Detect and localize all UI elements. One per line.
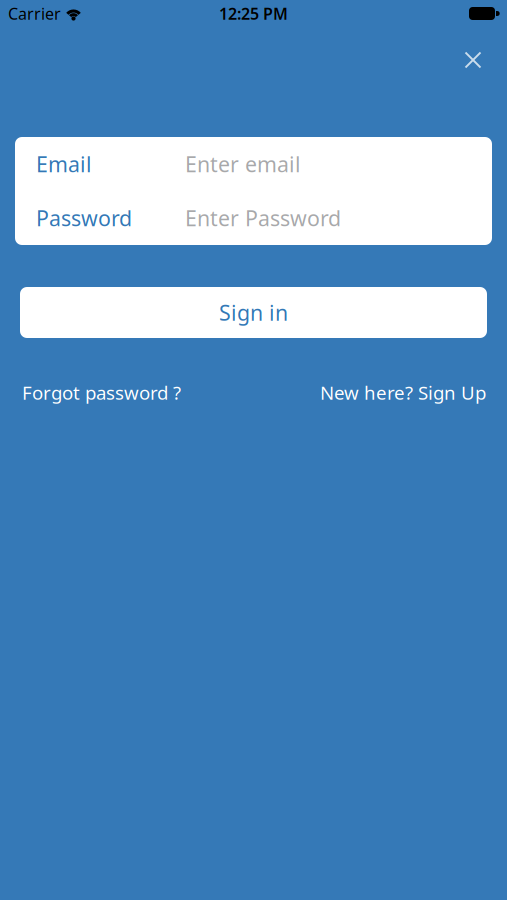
staticText: Carrier <box>8 3 61 24</box>
staticText: New here? Sign Up <box>320 380 486 405</box>
staticText: Email <box>36 150 92 178</box>
staticText: Forgot password ? <box>22 380 181 405</box>
button[interactable]: Close <box>465 52 481 68</box>
button[interactable]: New here? Sign Up <box>320 380 486 405</box>
staticText: 12:25 PM <box>219 3 288 24</box>
staticText: Password <box>36 204 132 232</box>
staticText: Sign in <box>219 298 288 327</box>
button[interactable]: Sign in <box>20 287 487 338</box>
staticText: Enter email <box>185 150 301 178</box>
button[interactable]: Forgot password ? <box>22 380 181 405</box>
staticText: Enter Password <box>185 204 341 232</box>
